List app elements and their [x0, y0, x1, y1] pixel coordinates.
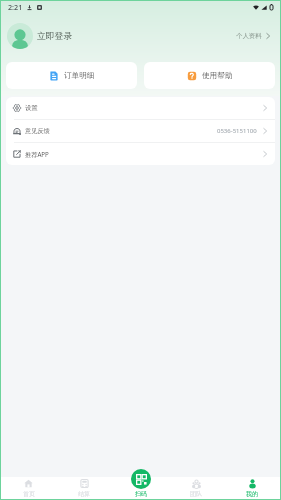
button[interactable]: 结算: [56, 477, 112, 499]
button[interactable]: 设置: [6, 97, 275, 119]
button[interactable]: 立即登录: [1, 13, 280, 59]
staticText: 使用帮助: [202, 71, 233, 81]
staticText: 0536-5151100: [217, 127, 257, 135]
button[interactable]: 我的: [224, 477, 280, 499]
button[interactable]: 首页: [1, 477, 56, 499]
staticText: 设置: [25, 104, 38, 112]
button[interactable]: 推荐APP: [6, 143, 275, 165]
button[interactable]: 订单明细: [6, 62, 137, 89]
button[interactable]: 团队: [168, 477, 224, 499]
staticText: 扫码: [135, 490, 147, 498]
button[interactable]: 使用帮助: [144, 62, 275, 89]
staticText: 个人资料: [236, 32, 262, 40]
button[interactable]: 意见反馈: [6, 120, 275, 142]
staticText: 推荐APP: [25, 150, 49, 158]
staticText: 团队: [190, 490, 202, 498]
staticText: 立即登录: [37, 31, 73, 42]
staticText: 结算: [78, 490, 90, 498]
staticText: 2:21: [8, 2, 23, 12]
button[interactable]: 扫码: [113, 469, 169, 499]
staticText: 意见反馈: [25, 127, 50, 135]
staticText: 订单明细: [64, 71, 95, 81]
staticText: 首页: [23, 490, 35, 498]
staticText: 我的: [246, 490, 258, 498]
